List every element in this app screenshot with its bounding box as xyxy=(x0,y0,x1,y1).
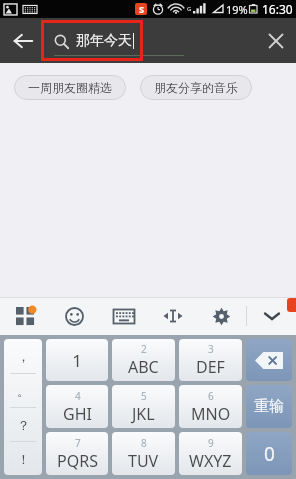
staticText: 3 xyxy=(208,342,214,356)
button[interactable]: Emoji xyxy=(50,297,99,335)
button[interactable]: Cursor control xyxy=(148,297,197,335)
button[interactable]: 3 xyxy=(179,339,242,381)
button[interactable]: ， xyxy=(4,339,42,373)
staticText: MNO xyxy=(191,403,231,425)
staticText: 16:30 xyxy=(262,1,293,17)
button[interactable]: Back xyxy=(0,18,46,63)
button[interactable]: 1 xyxy=(46,339,108,381)
button[interactable]: Backspace xyxy=(246,339,292,381)
button[interactable]: 重输 xyxy=(246,385,292,428)
button[interactable]: 朋友分享的音乐 xyxy=(140,75,252,100)
button[interactable]: 4 xyxy=(46,385,108,428)
button[interactable]: 8 xyxy=(112,432,175,475)
button[interactable]: ！ xyxy=(4,442,42,475)
button[interactable]: Hide keyboard xyxy=(247,297,296,335)
staticText: 7 xyxy=(75,436,81,450)
button[interactable]: 6 xyxy=(179,385,242,428)
staticText: 0 xyxy=(264,441,275,467)
staticText: 2 xyxy=(141,342,147,356)
button[interactable]: 0 xyxy=(246,432,292,475)
button[interactable]: 一周朋友圈精选 xyxy=(14,75,126,100)
button[interactable]: ？ xyxy=(4,408,42,441)
button[interactable]: 9 xyxy=(179,432,242,475)
staticText: 朋友分享的音乐 xyxy=(154,80,238,95)
staticText: 那年今天 xyxy=(76,32,132,50)
staticText: PQRS xyxy=(57,450,98,472)
button[interactable]: Clear xyxy=(256,18,296,63)
staticText: S xyxy=(139,3,144,15)
button[interactable]: 5 xyxy=(112,385,175,428)
staticText: 1 xyxy=(72,349,82,372)
staticText: 8 xyxy=(141,436,147,450)
staticText: ？ xyxy=(17,417,30,433)
staticText: 4 xyxy=(75,389,81,403)
staticText: GHI xyxy=(63,403,92,425)
button[interactable]: 那年今天 xyxy=(46,18,256,63)
staticText: DEF xyxy=(196,356,225,378)
button[interactable]: Keyboard layout xyxy=(99,297,148,335)
staticText: 5 xyxy=(141,389,147,403)
staticText: ABC xyxy=(128,356,159,378)
staticText: ， xyxy=(17,348,30,364)
button[interactable]: Settings xyxy=(197,297,246,335)
staticText: ！ xyxy=(17,451,30,467)
staticText: 9 xyxy=(208,436,214,450)
button[interactable]: 。 xyxy=(4,374,42,407)
button[interactable]: 2 xyxy=(112,339,175,381)
staticText: JKL xyxy=(132,403,155,425)
staticText: 一周朋友圈精选 xyxy=(28,80,112,95)
staticText: 重输 xyxy=(254,397,284,416)
staticText: 19% xyxy=(226,2,248,17)
staticText: TUV xyxy=(128,450,159,472)
staticText: G xyxy=(187,5,192,13)
button[interactable]: Apps xyxy=(0,297,50,335)
staticText: 。 xyxy=(17,383,30,399)
button[interactable]: 7 xyxy=(46,432,108,475)
staticText: 6 xyxy=(208,389,214,403)
staticText: WXYZ xyxy=(189,450,232,472)
